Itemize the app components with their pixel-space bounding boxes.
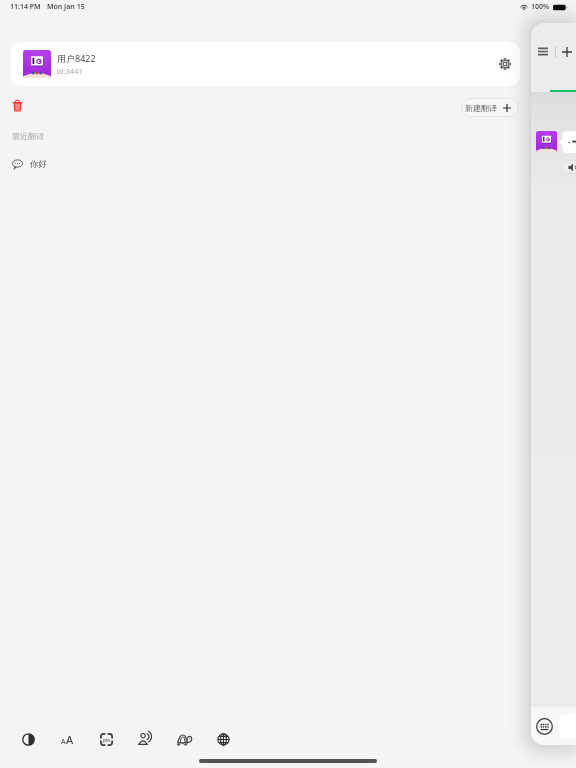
staticText: A (66, 732, 74, 747)
staticText: 11:14 PM (10, 2, 41, 12)
staticText: 你好 (30, 159, 47, 170)
staticText: id:3441 (57, 66, 83, 76)
button[interactable]: Slow speed (173, 728, 195, 750)
button[interactable]: Voice (134, 728, 156, 750)
button[interactable]: Menu (534, 42, 552, 60)
button[interactable]: Settings (494, 53, 516, 75)
button[interactable]: New chat (558, 43, 576, 61)
button[interactable]: 你好 (0, 154, 520, 175)
button[interactable]: Language (212, 728, 234, 750)
staticText: 最近翻译 (12, 131, 44, 141)
staticText: 用户8422 (57, 52, 96, 64)
button[interactable]: Keyboard (535, 717, 554, 736)
button[interactable]: Text size (56, 728, 78, 750)
button[interactable]: Play audio (561, 160, 576, 174)
button[interactable]: 新建翻译 (461, 98, 519, 117)
button[interactable]: 用户8422 (11, 42, 520, 86)
staticText: 100% (531, 2, 550, 12)
staticText: pin (103, 737, 111, 743)
staticText: 新建翻译 (465, 103, 497, 113)
button[interactable]: Contrast (17, 728, 39, 750)
staticText: A (61, 737, 66, 747)
staticText: Mon Jan 15 (47, 2, 85, 12)
button[interactable]: Pin (95, 728, 117, 750)
button[interactable]: Delete (8, 96, 27, 115)
